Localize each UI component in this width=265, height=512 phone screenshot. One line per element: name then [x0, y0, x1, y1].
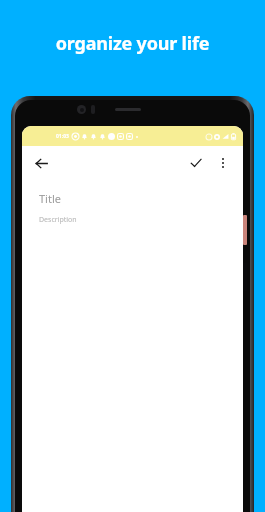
button[interactable]: Back [30, 152, 52, 174]
staticText: 01:03 [56, 133, 69, 140]
other: Power button [243, 215, 247, 245]
button[interactable]: Save [185, 152, 207, 174]
staticText: Description [39, 215, 77, 225]
staticText: organize your life [0, 31, 265, 56]
staticText: Title [39, 191, 61, 206]
button[interactable]: More options [212, 152, 234, 174]
